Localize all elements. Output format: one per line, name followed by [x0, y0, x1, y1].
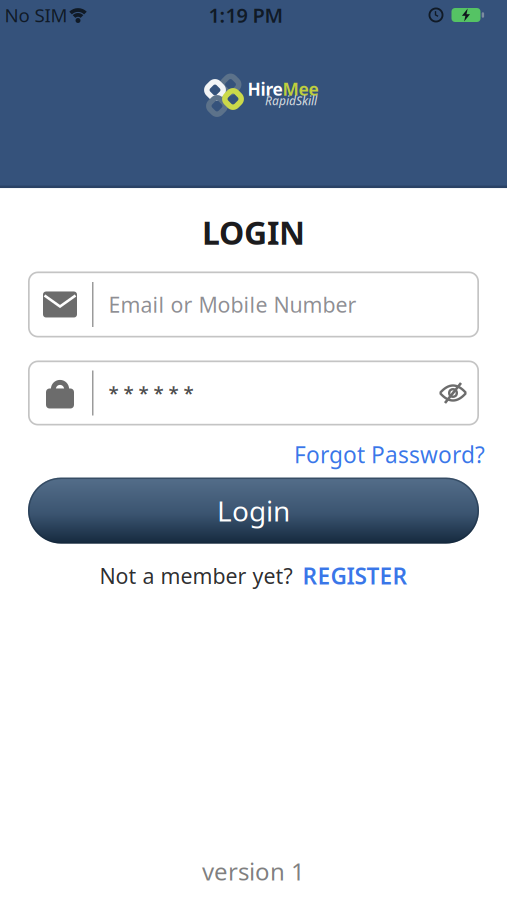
button[interactable]: Forgot Password? — [294, 439, 485, 470]
staticText: No SIM — [4, 3, 67, 27]
staticText: 1:19 PM — [208, 2, 283, 28]
staticText: RapidSkill — [265, 92, 317, 108]
staticText: REGISTER — [302, 561, 407, 591]
staticText: LOGIN — [202, 211, 305, 253]
staticText: Mee — [282, 77, 318, 100]
staticText: Email or Mobile Number — [108, 290, 356, 319]
staticText: Not a member yet? — [99, 561, 292, 590]
button[interactable]: Email or Mobile Number — [28, 271, 479, 337]
staticText: version 1 — [202, 855, 305, 887]
staticText: * * * * * * — [108, 381, 193, 405]
staticText: Forgot Password? — [294, 439, 485, 470]
button[interactable]: Show password — [439, 382, 479, 404]
button[interactable]: * * * * * * — [28, 360, 479, 425]
button[interactable]: REGISTER — [302, 561, 407, 591]
staticText: Login — [217, 492, 290, 529]
button[interactable]: Login — [28, 478, 479, 544]
staticText: Hire — [247, 77, 282, 100]
